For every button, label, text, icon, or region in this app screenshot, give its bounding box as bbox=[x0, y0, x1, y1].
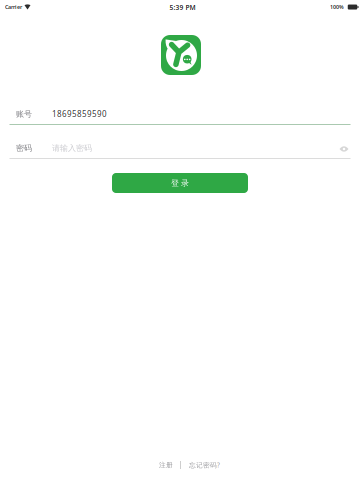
staticText: 请输入密码 bbox=[52, 143, 92, 153]
staticText: 100% bbox=[330, 3, 344, 11]
staticText: 5:39 PM bbox=[169, 3, 195, 12]
staticText: Carrier bbox=[5, 3, 22, 11]
button[interactable]: 登 录 bbox=[112, 173, 248, 193]
button[interactable]: 忘记密码? bbox=[181, 458, 228, 472]
staticText: 18695859590 bbox=[52, 109, 107, 119]
button[interactable]: 注册 bbox=[152, 458, 180, 472]
button[interactable]: 账号 bbox=[0, 104, 360, 123]
button[interactable]: Show password bbox=[335, 142, 352, 156]
staticText: 登 录 bbox=[171, 178, 189, 188]
staticText: 账号 bbox=[16, 109, 32, 119]
staticText: 密码 bbox=[16, 143, 32, 153]
staticText: 忘记密码? bbox=[189, 461, 220, 469]
staticText: 注册 bbox=[159, 461, 173, 469]
button[interactable]: 密码 bbox=[0, 138, 360, 157]
